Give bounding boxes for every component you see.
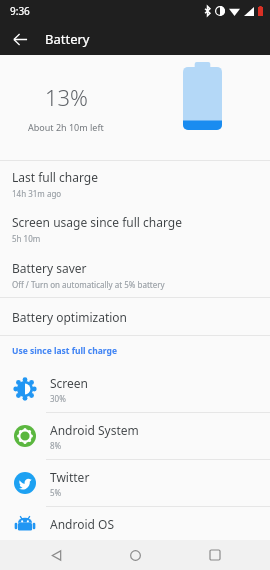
staticText: Battery saver xyxy=(12,260,87,276)
staticText: Android System xyxy=(50,422,139,438)
staticText: 8% xyxy=(50,440,62,451)
staticText: 14h 31m ago xyxy=(12,188,62,199)
button[interactable]: Screen usage since full charge xyxy=(0,206,270,252)
button[interactable]: Battery saver xyxy=(0,252,270,297)
staticText: 5% xyxy=(50,487,62,498)
staticText: Off / Turn on automatically at 5% batter… xyxy=(12,279,165,290)
staticText: 13% xyxy=(45,82,88,112)
staticText: Use since last full charge xyxy=(12,345,118,357)
button[interactable]: Screen xyxy=(0,366,270,412)
staticText: Android OS xyxy=(50,516,114,532)
staticText: Screen xyxy=(50,375,89,391)
button[interactable]: Back xyxy=(32,540,80,570)
staticText: Battery xyxy=(45,30,90,48)
staticText: 30% xyxy=(50,393,66,404)
staticText: 5h 10m xyxy=(12,233,41,244)
staticText: 9:36 xyxy=(10,4,30,18)
staticText: Last full charge xyxy=(12,169,98,185)
button[interactable]: Back xyxy=(6,25,34,53)
staticText: Screen usage since full charge xyxy=(12,214,182,230)
button[interactable]: Android OS xyxy=(0,507,270,540)
button[interactable]: Recent apps xyxy=(191,540,239,570)
button[interactable]: Home xyxy=(111,540,159,570)
button[interactable]: Twitter xyxy=(0,460,270,506)
button[interactable]: Android System xyxy=(0,413,270,459)
staticText: Twitter xyxy=(50,469,90,485)
staticText: About 2h 10m left xyxy=(28,121,104,133)
staticText: Battery optimization xyxy=(12,309,128,325)
button[interactable]: Battery optimization xyxy=(0,298,270,335)
button[interactable]: Last full charge xyxy=(0,161,270,206)
